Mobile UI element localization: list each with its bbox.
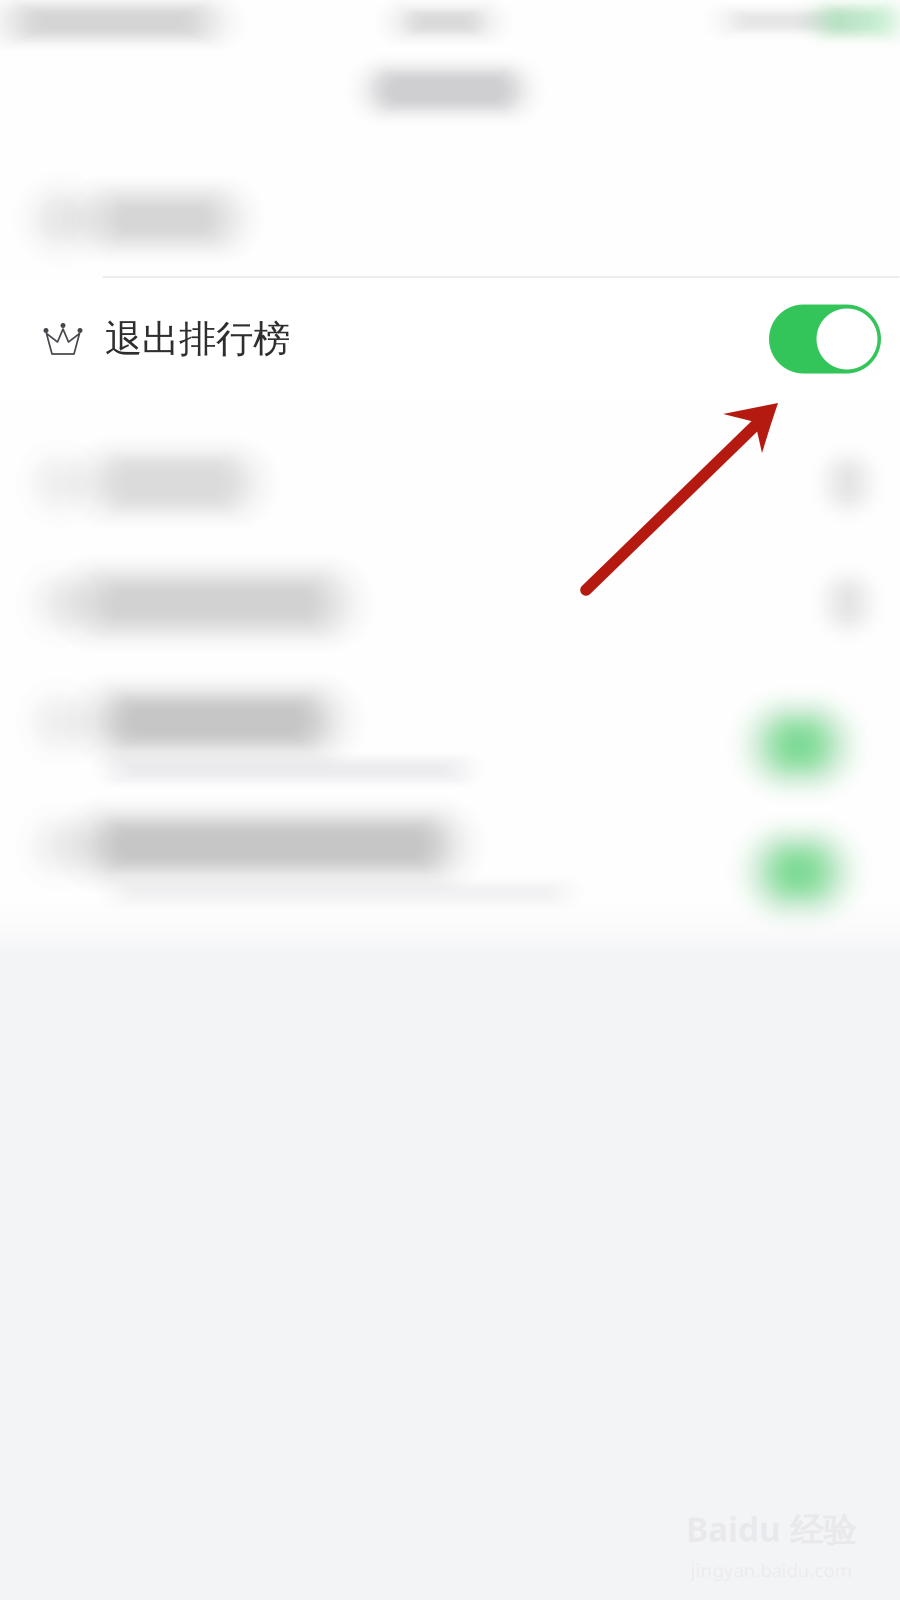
staticText: 退出排行榜: [105, 316, 290, 362]
button[interactable]: 退出排行榜: [0, 278, 900, 400]
staticText: Baidu 经验: [686, 1507, 856, 1551]
